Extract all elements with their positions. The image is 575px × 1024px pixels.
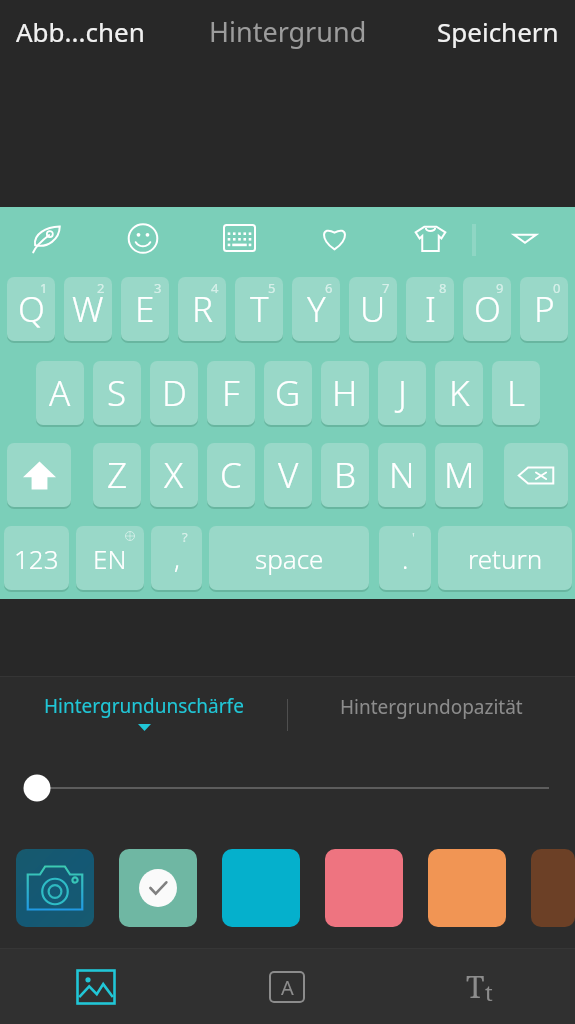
button[interactable]: Theme <box>16 207 76 271</box>
button[interactable]: Keyboard <box>209 207 270 271</box>
staticText: I <box>425 285 436 333</box>
staticText: . <box>402 541 409 576</box>
button[interactable]: X <box>150 443 198 507</box>
button[interactable]: W <box>64 277 112 341</box>
staticText: V <box>278 451 299 499</box>
button[interactable]: 123 <box>4 526 69 590</box>
button[interactable]: A <box>36 361 84 425</box>
staticText: 3 <box>154 279 162 297</box>
button[interactable]: U <box>349 277 397 341</box>
staticText: E <box>135 285 155 333</box>
button[interactable]: space <box>209 526 369 590</box>
staticText: K <box>449 369 470 417</box>
staticText: ? <box>182 528 188 546</box>
staticText: ' <box>412 528 415 546</box>
staticText: 7 <box>382 279 390 297</box>
button[interactable]: L <box>492 361 540 425</box>
button[interactable]: Font <box>383 949 575 1024</box>
staticText: Q <box>18 285 45 333</box>
staticText: Y <box>307 285 326 333</box>
staticText: C <box>220 451 242 499</box>
button[interactable]: , <box>151 526 202 590</box>
staticText: 6 <box>325 279 333 297</box>
staticText: Hintergrund <box>209 13 367 50</box>
button[interactable]: R <box>178 277 226 341</box>
button[interactable]: Q <box>7 277 55 341</box>
button[interactable]: Abb...chen <box>0 4 161 59</box>
staticText: R <box>192 285 213 333</box>
button[interactable]: J <box>378 361 426 425</box>
button[interactable]: Favorites <box>305 207 364 271</box>
button[interactable]: Speichern <box>421 4 575 59</box>
staticText: D <box>162 369 187 417</box>
staticText: 4 <box>211 279 219 297</box>
button[interactable]: T <box>235 277 283 341</box>
button[interactable] <box>531 849 575 927</box>
button[interactable]: Pick photo <box>16 849 94 927</box>
button[interactable]: C <box>207 443 255 507</box>
staticText: B <box>334 451 357 499</box>
button[interactable]: P <box>520 277 568 341</box>
staticText: N <box>389 451 415 499</box>
button[interactable]: return <box>438 526 572 590</box>
button[interactable]: Shift <box>7 443 71 507</box>
staticText: 1 <box>40 279 48 297</box>
button[interactable]: Key style <box>191 949 383 1024</box>
button[interactable]: . <box>379 526 431 590</box>
button[interactable]: H <box>321 361 369 425</box>
button[interactable]: S <box>93 361 141 425</box>
button[interactable] <box>222 849 300 927</box>
staticText: S <box>107 369 127 417</box>
button[interactable]: Stickers <box>400 207 461 271</box>
staticText: space <box>255 541 324 576</box>
staticText: Hintergrundunschärfe <box>44 693 244 719</box>
button[interactable]: EN <box>76 526 144 590</box>
staticText: W <box>72 285 104 333</box>
button[interactable]: D <box>150 361 198 425</box>
staticText: J <box>398 369 407 417</box>
staticText: U <box>360 285 386 333</box>
button[interactable]: Hintergrundopazität <box>288 677 575 753</box>
button[interactable]: V <box>264 443 312 507</box>
button[interactable]: O <box>463 277 511 341</box>
staticText: 123 <box>14 541 59 576</box>
staticText: A <box>49 369 71 417</box>
button[interactable]: Y <box>292 277 340 341</box>
staticText: Abb...chen <box>16 14 145 49</box>
button[interactable]: K <box>435 361 483 425</box>
button[interactable]: Background <box>0 949 191 1024</box>
staticText: T <box>466 966 485 1007</box>
button[interactable]: N <box>378 443 426 507</box>
button[interactable]: I <box>406 277 454 341</box>
staticText: P <box>534 285 555 333</box>
button[interactable] <box>325 849 403 927</box>
staticText: F <box>222 369 240 417</box>
button[interactable]: Backspace <box>504 443 568 507</box>
staticText: M <box>444 451 475 499</box>
button[interactable]: Collapse <box>497 207 553 271</box>
staticText: 9 <box>496 279 504 297</box>
button[interactable]: Z <box>93 443 141 507</box>
button[interactable]: B <box>321 443 369 507</box>
staticText: O <box>474 285 501 333</box>
staticText: Hintergrundopazität <box>340 694 523 720</box>
staticText: G <box>275 369 301 417</box>
staticText: return <box>468 541 543 576</box>
staticText: 0 <box>553 279 561 297</box>
button[interactable] <box>428 849 506 927</box>
button[interactable]: Hintergrundunschärfe <box>0 677 287 753</box>
button[interactable]: M <box>435 443 483 507</box>
button[interactable]: E <box>121 277 169 341</box>
button[interactable]: Emoji <box>113 207 173 271</box>
staticText: X <box>164 451 184 499</box>
button[interactable] <box>119 849 197 927</box>
button[interactable]: F <box>207 361 255 425</box>
button[interactable]: G <box>264 361 312 425</box>
staticText: 2 <box>97 279 105 297</box>
staticText: Z <box>107 451 128 499</box>
staticText: 8 <box>439 279 447 297</box>
staticText: L <box>507 369 526 417</box>
staticText: A <box>281 974 294 1001</box>
staticText: t <box>485 977 493 1007</box>
staticText: , <box>174 541 180 576</box>
